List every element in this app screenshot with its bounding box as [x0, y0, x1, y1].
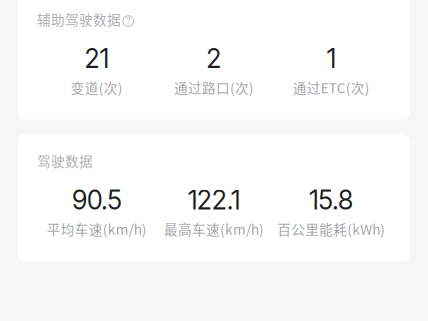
staticText: 15.8 [309, 184, 353, 216]
staticText: ? [126, 16, 130, 26]
staticText: 最高车速(km/h) [164, 219, 264, 239]
staticText: 变道(次) [71, 77, 123, 97]
staticText: 辅助驾驶数据 [37, 9, 121, 29]
staticText: 90.5 [72, 184, 121, 216]
staticText: 驾驶数据 [37, 151, 93, 170]
staticText: 百公里能耗(kWh) [277, 219, 385, 239]
staticText: 通过ETC(次) [293, 77, 370, 97]
staticText: 通过路口(次) [174, 77, 254, 97]
staticText: 2 [206, 43, 221, 74]
staticText: 平均车速(km/h) [47, 219, 147, 239]
staticText: 1 [327, 43, 336, 74]
button[interactable]: 关于辅助驾驶数据 [122, 10, 134, 28]
staticText: 21 [85, 43, 109, 74]
staticText: 122.1 [188, 184, 240, 216]
